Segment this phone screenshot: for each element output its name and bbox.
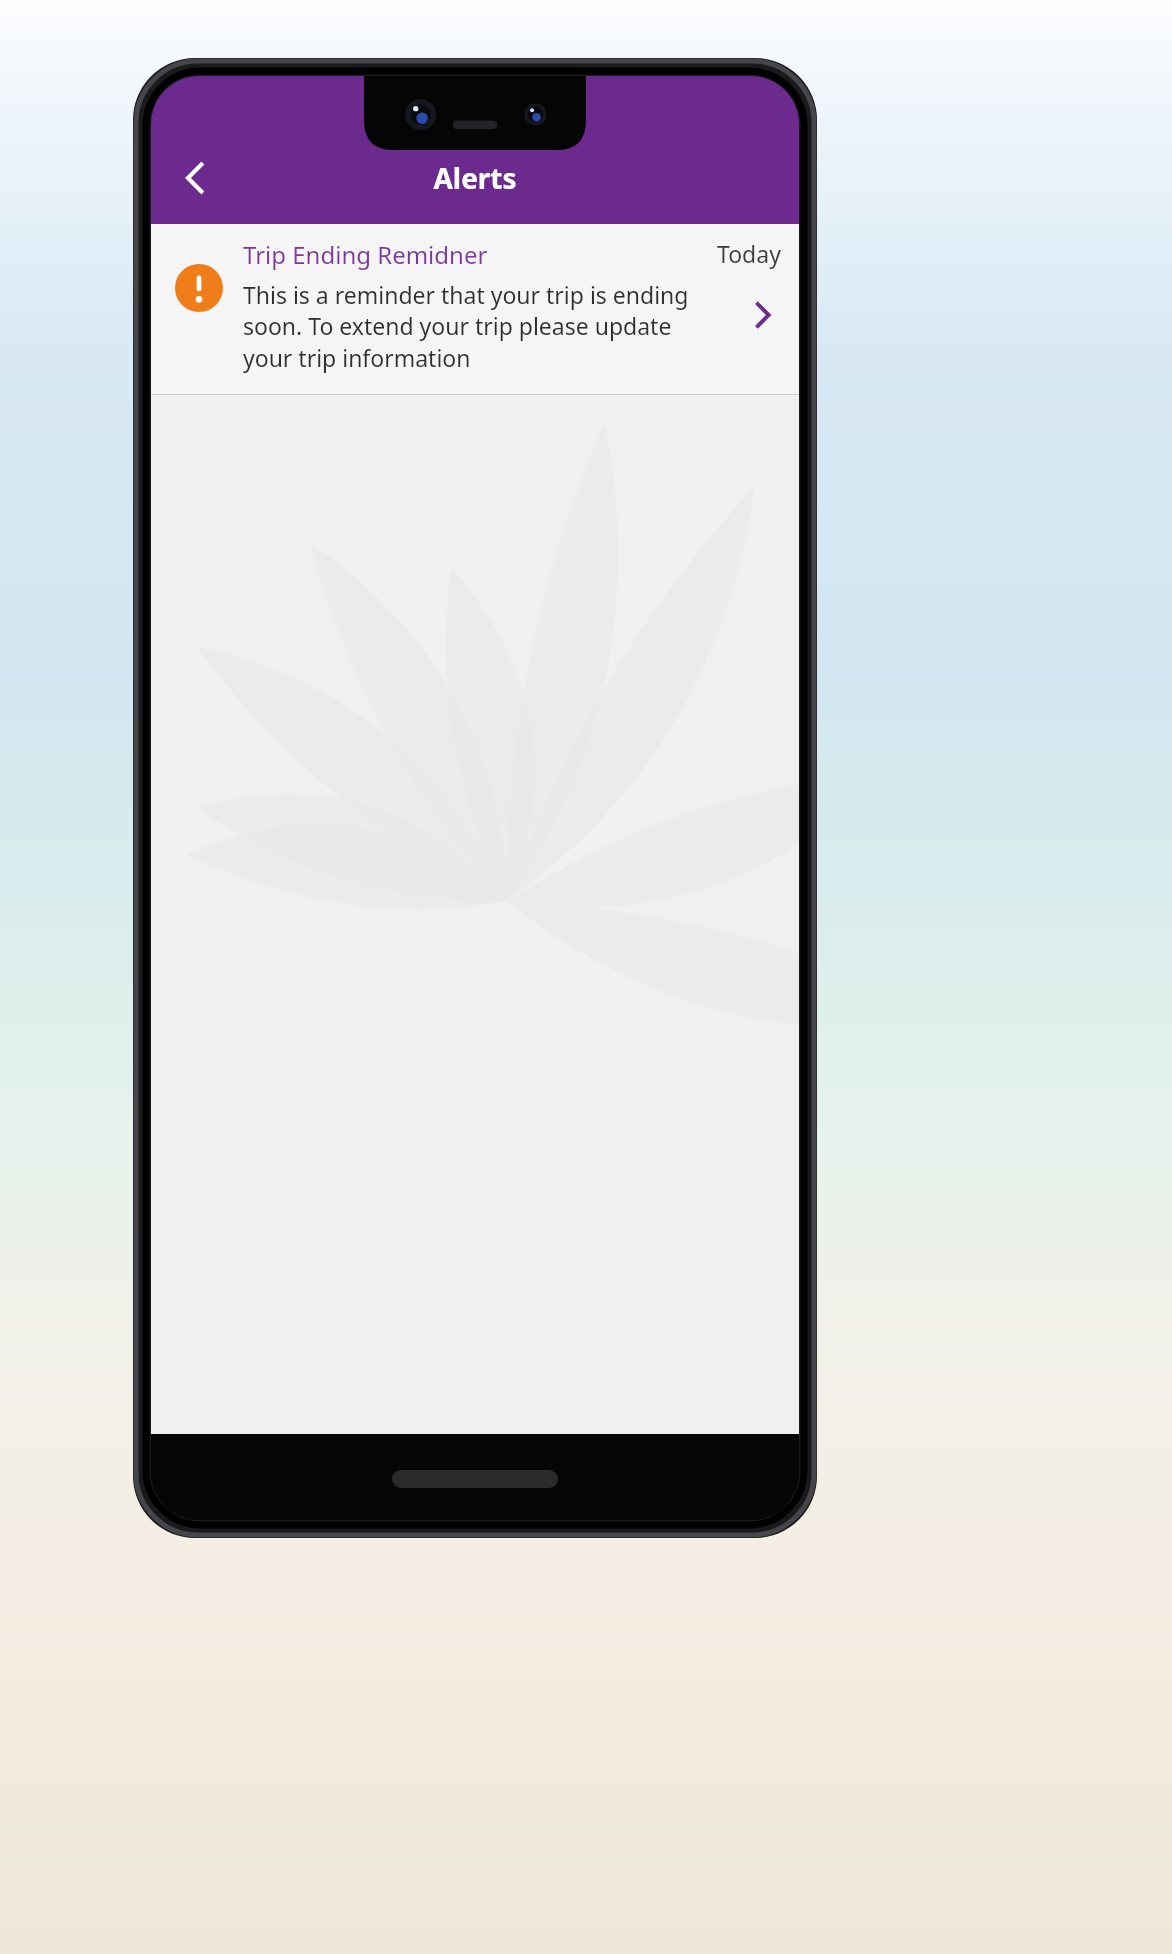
staticText: Today bbox=[717, 238, 781, 269]
staticText: Trip Ending Remidner bbox=[243, 238, 488, 271]
button[interactable]: Back bbox=[157, 140, 233, 216]
staticText: Alerts bbox=[433, 159, 517, 197]
staticText: This is a reminder that your trip is end… bbox=[243, 279, 705, 374]
button[interactable]: Trip Ending Remidner bbox=[151, 224, 799, 394]
button[interactable]: Open alert details bbox=[745, 297, 781, 333]
